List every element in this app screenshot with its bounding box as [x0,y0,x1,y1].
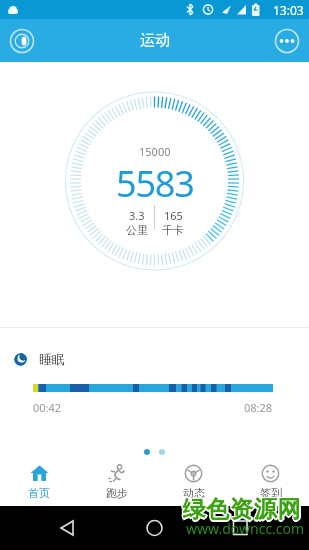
staticText: 首页 [28,486,50,500]
staticText: www.downcc.com [186,519,305,538]
staticText: 绿色资源网 [183,496,302,525]
button[interactable]: 睡眠 [0,328,309,415]
staticText: 绿色资源网 [182,495,301,524]
staticText: 3.3 [129,208,145,223]
staticText: 00:42 [33,400,62,415]
staticText: 跑步 [106,486,128,500]
staticText: 绿色资源网 [183,494,302,523]
button[interactable] [274,28,300,54]
button[interactable] [134,508,174,548]
staticText: 公里 [126,223,148,237]
button[interactable] [9,28,35,54]
staticText: 绿色资源网 [182,497,301,526]
staticText: 签到 [260,486,282,500]
staticText: 运动 [140,31,170,50]
button[interactable] [220,508,260,548]
staticText: 动态 [183,486,205,500]
staticText: 5583 [116,159,194,208]
staticText: 13:03 [273,2,304,18]
button[interactable]: 动态 [155,459,232,500]
staticText: 绿色资源网 [182,494,301,523]
staticText: 睡眠 [39,351,65,367]
staticText: 165 [164,208,183,223]
staticText: 绿色资源网 [181,495,300,524]
button[interactable]: 15000 [0,62,309,327]
staticText: 15000 [139,144,171,159]
button[interactable]: 跑步 [78,459,155,500]
staticText: 绿色资源网 [181,496,300,525]
staticText: 08:28 [244,400,273,415]
button[interactable] [47,508,87,548]
button[interactable]: 签到 [232,459,309,500]
staticText: 绿色资源网 [184,495,303,524]
staticText: 千卡 [162,223,184,237]
button[interactable]: 首页 [0,459,78,500]
staticText: 绿色资源网 [181,494,300,523]
